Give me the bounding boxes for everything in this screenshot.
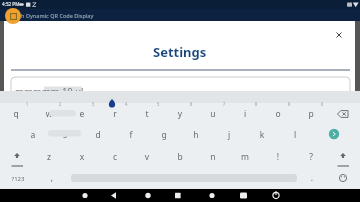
staticText: u <box>189 108 237 120</box>
staticText: 4 <box>102 101 150 107</box>
staticText: r <box>91 108 139 120</box>
staticText: y <box>156 108 204 120</box>
staticText: m <box>221 151 269 163</box>
staticText: w <box>25 108 73 120</box>
staticText: 3 <box>69 101 117 107</box>
staticText: z <box>25 151 73 163</box>
staticText: p <box>287 108 335 120</box>
button[interactable]: Shift <box>327 146 360 167</box>
button[interactable]: Shift <box>0 146 33 167</box>
staticText: ?123 <box>0 175 42 183</box>
staticText: n <box>189 151 237 163</box>
button[interactable]: Space <box>71 170 297 184</box>
staticText: ? <box>287 151 335 163</box>
button[interactable]: Close <box>330 26 348 44</box>
staticText: q <box>0 108 40 120</box>
staticText: 7 <box>200 101 248 107</box>
staticText: e <box>58 108 106 120</box>
button[interactable]: Emoji <box>331 168 353 190</box>
staticText: i <box>221 108 269 120</box>
staticText: c <box>91 151 139 163</box>
staticText: 9 <box>265 101 313 107</box>
staticText: f <box>107 129 155 141</box>
staticText: 5 <box>134 101 182 107</box>
staticText: Settings <box>153 43 207 61</box>
staticText: 4:52 PM <box>2 1 20 7</box>
staticText: d <box>74 129 122 141</box>
staticText: x <box>58 151 106 163</box>
staticText: . <box>288 172 336 184</box>
staticText: t <box>123 108 171 120</box>
staticText: j <box>205 129 253 141</box>
staticText: mmmmm 10 ul <box>15 85 84 98</box>
staticText: a <box>9 129 57 141</box>
staticText: l <box>271 129 319 141</box>
staticText: 2 <box>36 101 84 107</box>
staticText: 1 <box>3 101 51 107</box>
staticText: s <box>41 129 89 141</box>
staticText: h Dynamic QR Code Display <box>21 12 94 19</box>
button[interactable]: App icon <box>5 8 21 24</box>
staticText: ! <box>254 151 302 163</box>
button[interactable]: Backspace <box>327 103 360 124</box>
staticText: h <box>172 129 220 141</box>
staticText: g <box>140 129 188 141</box>
staticText: b <box>156 151 204 163</box>
staticText: , <box>28 172 76 184</box>
staticText: o <box>254 108 302 120</box>
staticText: 6 <box>167 101 215 107</box>
staticText: 0 <box>298 101 346 107</box>
staticText: k <box>238 129 286 141</box>
staticText: v <box>123 151 171 163</box>
staticText: 8 <box>232 101 280 107</box>
button[interactable]: Enter <box>312 124 356 145</box>
